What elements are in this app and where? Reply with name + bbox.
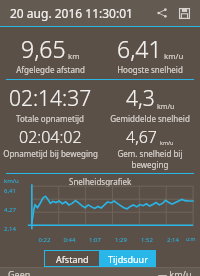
staticText: Snelheidsgrafiek [69, 176, 132, 187]
staticText: 1:07 [82, 236, 108, 244]
staticText: Opnametijd bij beweging [3, 148, 98, 159]
staticText: 6,41 [117, 33, 162, 64]
button[interactable]: Afstand [44, 250, 100, 267]
staticText: 0:22 [32, 236, 57, 244]
staticText: 20 aug. 2016 11:30:01 [10, 5, 152, 21]
staticText: Tijdsduur [108, 253, 148, 265]
button[interactable]: Save [174, 3, 194, 23]
staticText: km/u [164, 51, 184, 62]
staticText: Gemiddelde snelheid [110, 113, 190, 124]
staticText: km [68, 51, 80, 62]
staticText: 4,67 [126, 126, 158, 148]
staticText: 2:14 [160, 236, 186, 244]
staticText: Geen [8, 268, 158, 276]
staticText: 1:29 [108, 236, 134, 244]
staticText: 02:04:02 [19, 126, 82, 148]
staticText: Afgelegde afstand [16, 64, 85, 75]
staticText: 4,27 [4, 206, 16, 214]
staticText: 9,65 [21, 33, 66, 64]
staticText: km/u [157, 101, 175, 111]
staticText: Hoogste snelheid [117, 64, 183, 75]
staticText: Totale opnametijd [16, 113, 84, 124]
staticText: 2,14 [4, 225, 16, 233]
staticText: km/u [160, 139, 174, 146]
staticText: — km/u [158, 268, 192, 276]
staticText: km/u [4, 177, 19, 185]
button[interactable]: Share [152, 3, 172, 23]
staticText: 02:14:37 [9, 84, 92, 113]
staticText: 1:52 [134, 236, 160, 244]
staticText: 6,41 [4, 187, 16, 195]
staticText: 0:44 [57, 236, 82, 244]
staticText: 4,3 [126, 84, 155, 113]
staticText: u:m [186, 236, 196, 243]
staticText: Afstand [56, 253, 89, 265]
button[interactable]: Tijdsduur [100, 250, 156, 267]
staticText: Gem. snelheid bij beweging [100, 148, 200, 170]
